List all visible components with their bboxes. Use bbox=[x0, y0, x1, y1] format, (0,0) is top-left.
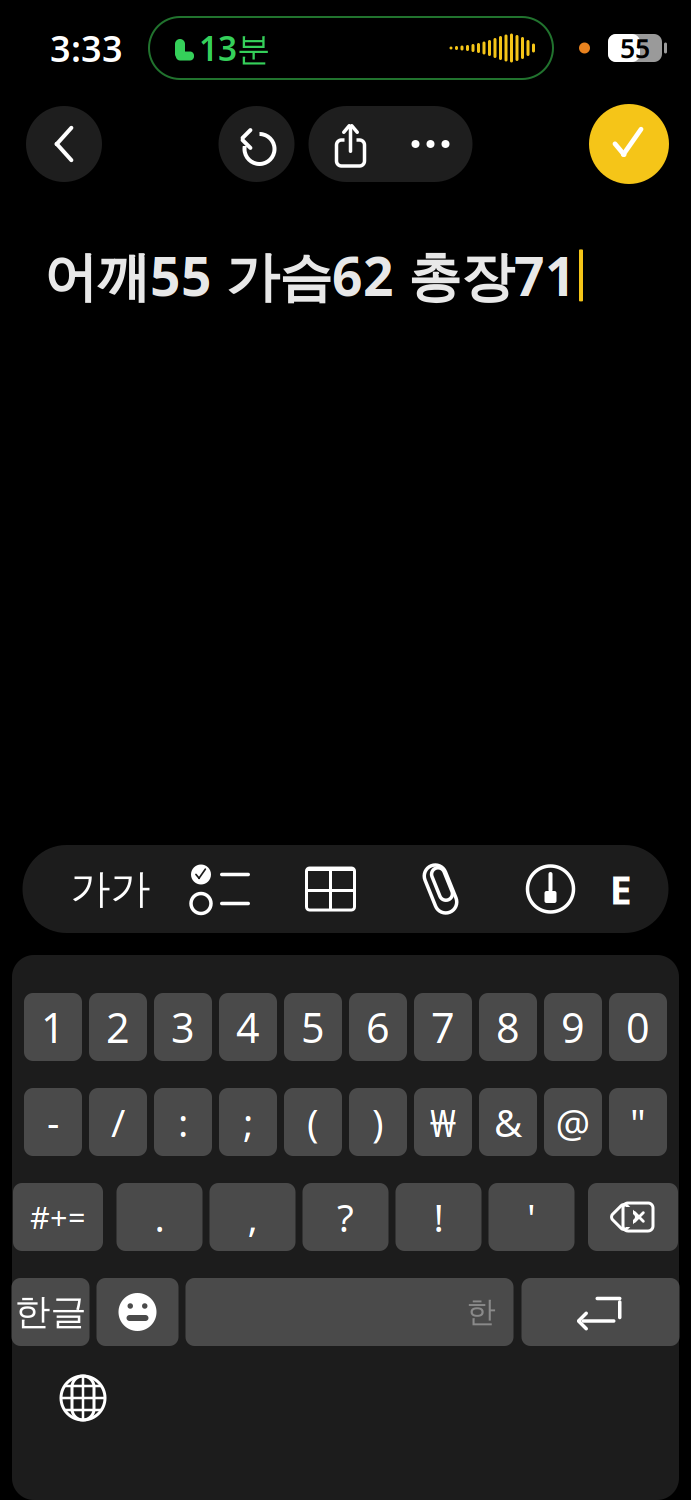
button[interactable]: 1 bbox=[24, 993, 82, 1061]
staticText: ? bbox=[337, 1191, 354, 1243]
button[interactable]: Share bbox=[310, 106, 390, 182]
staticText: ₩ bbox=[430, 1096, 456, 1148]
button[interactable]: Back bbox=[26, 106, 102, 182]
button[interactable]: #+= bbox=[13, 1183, 103, 1251]
staticText: 6 bbox=[366, 1000, 390, 1054]
button[interactable]: ) bbox=[349, 1088, 407, 1156]
button[interactable]: @ bbox=[544, 1088, 602, 1156]
button[interactable]: 0 bbox=[609, 993, 667, 1061]
button[interactable]: Text formatting bbox=[55, 845, 165, 933]
staticText: 1 bbox=[41, 1000, 65, 1054]
button[interactable]: 4 bbox=[219, 993, 277, 1061]
staticText: . bbox=[154, 1191, 164, 1243]
staticText: 가가 bbox=[70, 864, 150, 913]
staticText: " bbox=[630, 1096, 646, 1148]
button[interactable]: - bbox=[24, 1088, 82, 1156]
staticText: ' bbox=[527, 1191, 536, 1243]
staticText: E bbox=[609, 862, 631, 915]
button[interactable]: Checklist bbox=[165, 845, 275, 933]
staticText: ) bbox=[372, 1096, 384, 1148]
button[interactable]: 3 bbox=[154, 993, 212, 1061]
button[interactable]: & bbox=[479, 1088, 537, 1156]
button[interactable]: . bbox=[116, 1183, 202, 1251]
staticText: 5 bbox=[301, 1000, 325, 1054]
button[interactable]: Return bbox=[521, 1278, 679, 1346]
staticText: / bbox=[111, 1096, 125, 1148]
staticText: ( bbox=[307, 1096, 319, 1148]
button[interactable]: Markup bbox=[495, 845, 605, 933]
button[interactable]: 9 bbox=[544, 993, 602, 1061]
button[interactable]: ; bbox=[219, 1088, 277, 1156]
button[interactable]: 2 bbox=[89, 993, 147, 1061]
staticText: 8 bbox=[496, 1000, 520, 1054]
button[interactable]: 5 bbox=[284, 993, 342, 1061]
button[interactable]: , bbox=[209, 1183, 295, 1251]
button[interactable]: ( bbox=[284, 1088, 342, 1156]
staticText: 3 bbox=[171, 1000, 195, 1054]
staticText: 어깨55 가슴62 총장71 bbox=[44, 240, 576, 311]
button[interactable]: ' bbox=[488, 1183, 574, 1251]
button[interactable]: 6 bbox=[349, 993, 407, 1061]
staticText: #+= bbox=[30, 1197, 86, 1237]
staticText: 7 bbox=[431, 1000, 455, 1054]
button[interactable]: Table bbox=[275, 845, 385, 933]
staticText: : bbox=[178, 1096, 188, 1148]
button[interactable]: 7 bbox=[414, 993, 472, 1061]
button[interactable]: ₩ bbox=[414, 1088, 472, 1156]
button[interactable]: More bbox=[390, 106, 470, 182]
staticText: 한 bbox=[466, 1294, 495, 1330]
button[interactable]: Space bbox=[185, 1278, 513, 1346]
staticText: 55 bbox=[620, 30, 650, 66]
staticText: @ bbox=[555, 1096, 590, 1148]
button[interactable]: Emoji bbox=[96, 1278, 178, 1346]
button[interactable]: Korean keyboard bbox=[11, 1278, 89, 1346]
button[interactable]: ! bbox=[395, 1183, 481, 1251]
button[interactable]: More tools bbox=[605, 845, 635, 933]
button[interactable]: Attach bbox=[385, 845, 495, 933]
staticText: , bbox=[247, 1191, 257, 1243]
button[interactable]: Delete bbox=[588, 1183, 678, 1251]
staticText: ; bbox=[243, 1096, 253, 1148]
button[interactable]: Switch keyboard bbox=[43, 1358, 123, 1438]
staticText: & bbox=[494, 1096, 522, 1148]
staticText: 한글 bbox=[14, 1290, 86, 1334]
staticText: 2 bbox=[106, 1000, 130, 1054]
button[interactable]: Undo bbox=[218, 106, 294, 182]
staticText: 3:33 bbox=[50, 24, 123, 72]
button[interactable]: " bbox=[609, 1088, 667, 1156]
staticText: 9 bbox=[561, 1000, 585, 1054]
button[interactable]: : bbox=[154, 1088, 212, 1156]
staticText: ! bbox=[433, 1191, 443, 1243]
button[interactable]: 8 bbox=[479, 993, 537, 1061]
staticText: - bbox=[47, 1096, 59, 1148]
button[interactable]: / bbox=[89, 1088, 147, 1156]
staticText: 0 bbox=[626, 1000, 650, 1054]
button[interactable]: Done bbox=[589, 104, 669, 184]
staticText: 13분 bbox=[199, 26, 270, 70]
button[interactable]: ? bbox=[302, 1183, 388, 1251]
staticText: 4 bbox=[236, 1000, 260, 1054]
